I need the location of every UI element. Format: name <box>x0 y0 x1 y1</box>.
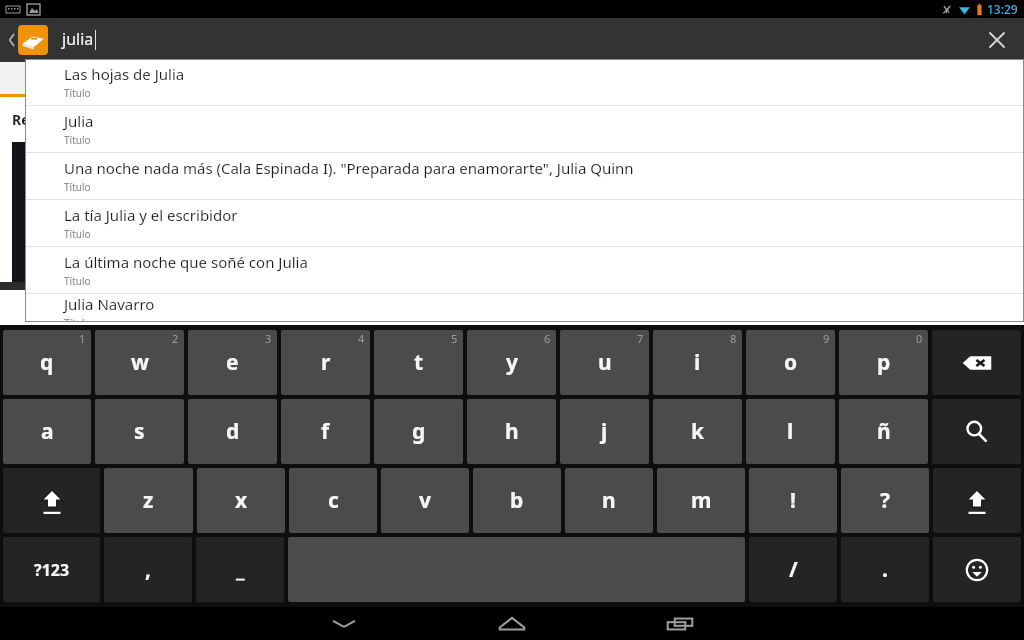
staticText: La última noche que soñé con Julia <box>64 252 308 272</box>
staticText: _ <box>236 555 245 584</box>
staticText: h <box>505 417 519 446</box>
staticText: Título <box>64 133 91 147</box>
button[interactable]: / <box>749 537 837 602</box>
button[interactable]: c <box>289 468 377 533</box>
staticText: t <box>414 348 424 377</box>
staticText: l <box>787 417 794 446</box>
staticText: 13:29 <box>987 1 1018 17</box>
staticText: j <box>601 417 608 446</box>
staticText: n <box>602 486 616 515</box>
button[interactable]: z <box>104 468 193 533</box>
button[interactable]: . <box>841 537 929 602</box>
staticText: v <box>419 486 431 515</box>
button[interactable]: Las hojas de Julia <box>25 59 1024 105</box>
staticText: 1 <box>79 331 86 346</box>
button[interactable]: b <box>473 468 561 533</box>
button[interactable]: Recent apps <box>648 607 712 640</box>
button[interactable]: p <box>839 330 928 395</box>
staticText: 2 <box>172 331 179 346</box>
staticText: x <box>235 486 248 515</box>
staticText: Título <box>64 180 91 194</box>
button[interactable]: _ <box>196 537 284 602</box>
staticText: u <box>598 348 612 377</box>
button[interactable]: i <box>653 330 742 395</box>
button[interactable]: Julia Navarro <box>25 294 1024 322</box>
button[interactable]: f <box>281 399 370 464</box>
button[interactable]: o <box>746 330 835 395</box>
staticText: s <box>134 417 145 446</box>
staticText: Julia Navarro <box>64 294 155 314</box>
staticText: La tía Julia y el escribidor <box>64 205 238 225</box>
button[interactable]: Una noche nada más (Cala Espinada I). "P… <box>25 153 1024 199</box>
button[interactable]: La última noche que soñé con Julia <box>25 247 1024 293</box>
staticText: 8 <box>730 331 737 346</box>
button[interactable]: n <box>565 468 653 533</box>
button[interactable]: y <box>467 330 556 395</box>
staticText: Una noche nada más (Cala Espinada I). "P… <box>64 158 634 178</box>
staticText: Título <box>64 86 91 100</box>
button[interactable]: d <box>188 399 277 464</box>
button[interactable]: s <box>95 399 184 464</box>
button[interactable]: Up <box>0 18 56 62</box>
staticText: Las hojas de Julia <box>64 64 185 84</box>
staticText: Julia <box>64 111 94 131</box>
staticText: Título <box>64 227 91 241</box>
staticText: 6 <box>544 331 551 346</box>
staticText: ! <box>790 486 796 515</box>
button[interactable]: Shift <box>3 468 100 533</box>
button[interactable]: e <box>188 330 277 395</box>
button[interactable]: Home <box>480 607 544 640</box>
button[interactable]: m <box>657 468 745 533</box>
staticText: julia <box>62 28 94 50</box>
button[interactable]: q <box>3 330 91 395</box>
button[interactable]: w <box>95 330 184 395</box>
button[interactable]: t <box>374 330 463 395</box>
button[interactable]: r <box>281 330 370 395</box>
button[interactable]: v <box>381 468 469 533</box>
button[interactable]: La tía Julia y el escribidor <box>25 200 1024 246</box>
staticText: ? <box>880 486 891 515</box>
button[interactable]: , <box>104 537 192 602</box>
button[interactable]: Shift right <box>933 468 1021 533</box>
button[interactable]: ?123 <box>3 537 100 602</box>
button[interactable]: x <box>197 468 285 533</box>
staticText: ñ <box>877 417 891 446</box>
staticText: r <box>321 348 331 377</box>
staticText: k <box>691 417 705 446</box>
staticText: m <box>691 486 712 515</box>
button[interactable]: u <box>560 330 649 395</box>
button[interactable]: h <box>467 399 556 464</box>
button[interactable]: l <box>746 399 835 464</box>
staticText: i <box>694 348 701 377</box>
staticText: c <box>328 486 339 515</box>
staticText: b <box>510 486 524 515</box>
staticText: y <box>506 348 518 377</box>
staticText: 3 <box>265 331 272 346</box>
button[interactable]: a <box>3 399 91 464</box>
button[interactable]: Hide keyboard <box>312 607 376 640</box>
button[interactable]: Julia <box>25 106 1024 152</box>
button[interactable]: k <box>653 399 742 464</box>
staticText: f <box>321 417 330 446</box>
staticText: ?123 <box>34 559 70 581</box>
staticText: d <box>226 417 240 446</box>
button[interactable]: Emoji <box>933 537 1021 602</box>
staticText: p <box>877 348 891 377</box>
button[interactable]: Close search <box>970 18 1024 62</box>
staticText: q <box>40 348 54 377</box>
button[interactable]: j <box>560 399 649 464</box>
button[interactable]: g <box>374 399 463 464</box>
button[interactable]: ! <box>749 468 837 533</box>
staticText: o <box>784 348 798 377</box>
button[interactable]: Search <box>932 399 1021 464</box>
staticText: Título <box>64 274 91 288</box>
staticText: z <box>143 486 154 515</box>
staticText: , <box>145 555 151 584</box>
button[interactable]: ? <box>841 468 929 533</box>
staticText: Título <box>64 316 91 322</box>
staticText: a <box>41 417 54 446</box>
button[interactable]: ñ <box>839 399 928 464</box>
button[interactable]: Backspace <box>932 330 1021 395</box>
